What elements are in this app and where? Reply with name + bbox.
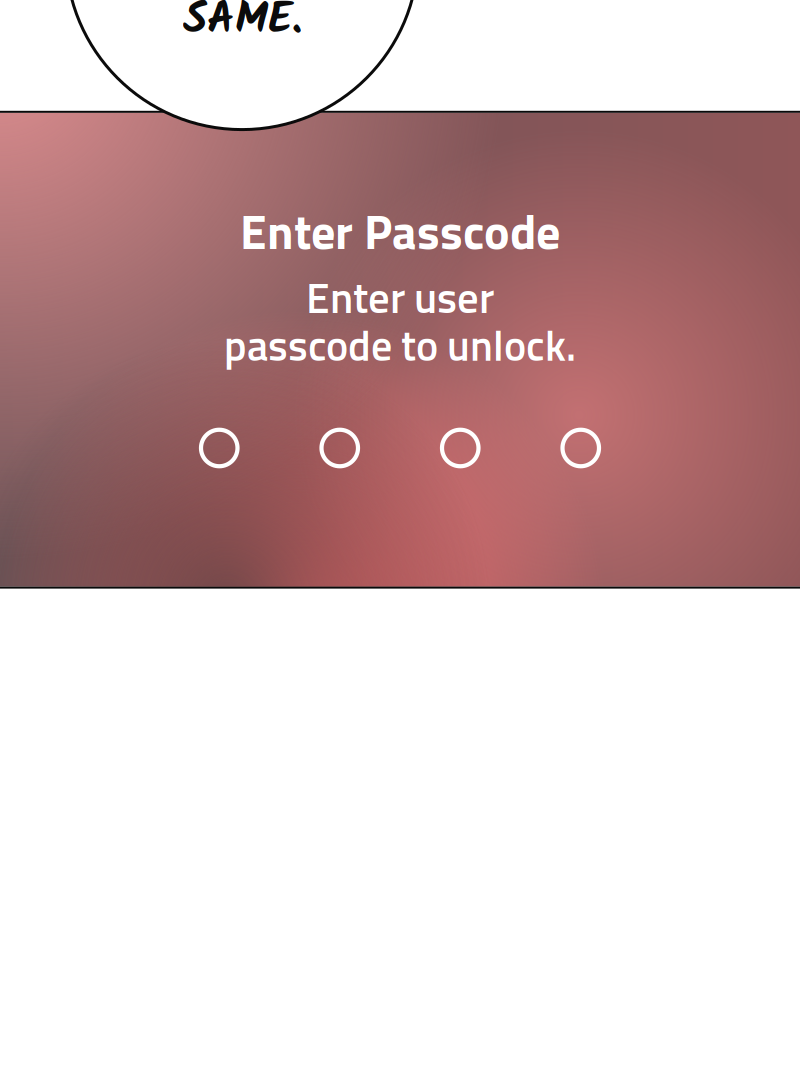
staticText: Enter user <box>306 265 494 329</box>
button[interactable]: Enter Passcode <box>0 113 800 587</box>
staticText: passcode to unlock. <box>224 313 576 377</box>
staticText: SAME. <box>183 0 302 56</box>
staticText: Enter Passcode <box>240 194 560 267</box>
